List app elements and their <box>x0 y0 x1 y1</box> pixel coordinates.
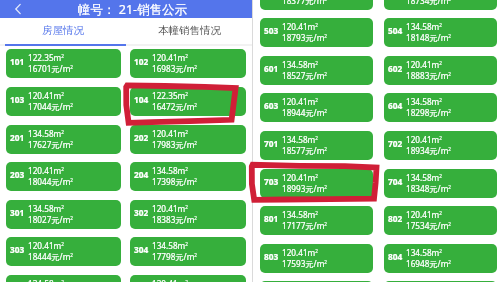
staticText: 134.58m2 <box>152 165 188 176</box>
staticText: 16701元/m2 <box>28 63 73 74</box>
staticText: 803 <box>264 251 279 262</box>
staticText: 102 <box>134 56 149 67</box>
staticText: 18944元/m2 <box>282 107 327 118</box>
button[interactable]: 402 <box>130 275 246 282</box>
staticText: 603 <box>264 100 279 111</box>
staticText: 201 <box>10 132 25 143</box>
staticText: 120.41m2 <box>282 96 318 107</box>
staticText: 134.58m2 <box>28 128 64 139</box>
staticText: 18527元/m2 <box>282 70 327 81</box>
button[interactable]: 301 <box>6 200 121 229</box>
staticText: 601 <box>264 63 279 74</box>
button[interactable]: 303 <box>6 237 121 266</box>
button[interactable]: 702 <box>384 131 497 160</box>
button[interactable]: 304 <box>130 237 246 266</box>
staticText: 18883元/m2 <box>406 70 451 81</box>
button[interactable]: 403 <box>260 0 373 10</box>
button[interactable]: 503 <box>260 18 373 47</box>
button[interactable]: 504 <box>384 18 497 47</box>
staticText: 18044元/m2 <box>28 176 73 187</box>
button[interactable]: Back <box>0 0 20 18</box>
staticText: 18577元/m2 <box>282 145 327 156</box>
staticText: 120.41m2 <box>406 134 442 145</box>
staticText: 202 <box>134 132 149 143</box>
staticText: 本幢销售情况 <box>158 24 221 37</box>
button[interactable]: 602 <box>384 56 497 85</box>
staticText: 134.58m2 <box>282 134 318 145</box>
button[interactable]: 704 <box>384 169 497 198</box>
staticText: 120.41m2 <box>282 247 318 258</box>
button[interactable]: 302 <box>130 200 246 229</box>
button[interactable]: 101 <box>6 49 121 78</box>
staticText: 303 <box>10 244 25 255</box>
staticText: 103 <box>10 94 25 105</box>
staticText: 18934元/m2 <box>406 145 451 156</box>
staticText: 房屋情况 <box>42 24 84 37</box>
button[interactable]: 202 <box>130 125 246 154</box>
staticText: 17983元/m2 <box>152 139 197 150</box>
staticText: 704 <box>388 176 403 187</box>
staticText: 17177元/m2 <box>282 220 327 231</box>
staticText: 104 <box>134 94 149 105</box>
button[interactable]: 房屋情况 <box>0 18 126 47</box>
staticText: 301 <box>10 207 25 218</box>
staticText: 134.58m2 <box>406 96 442 107</box>
staticText: 203 <box>10 169 25 180</box>
button[interactable]: 104 <box>130 87 246 116</box>
staticText: 120.41m2 <box>28 90 64 101</box>
staticText: 804 <box>388 251 403 262</box>
button[interactable]: 本幢销售情况 <box>126 18 252 47</box>
staticText: 504 <box>388 25 403 36</box>
button[interactable]: 701 <box>260 131 373 160</box>
staticText: 134.58m2 <box>406 172 442 183</box>
staticText: 18793元/m2 <box>282 32 327 43</box>
staticText: 602 <box>388 63 403 74</box>
button[interactable]: 604 <box>384 93 497 122</box>
staticText: 503 <box>264 25 279 36</box>
staticText: 120.41m2 <box>152 278 188 282</box>
button[interactable]: 401 <box>6 275 121 282</box>
staticText: 18148元/m2 <box>406 32 451 43</box>
staticText: 18444元/m2 <box>28 251 73 262</box>
staticText: 16948元/m2 <box>406 258 451 269</box>
button[interactable]: 601 <box>260 56 373 85</box>
staticText: 18348元/m2 <box>406 183 451 194</box>
button[interactable]: 603 <box>260 93 373 122</box>
button[interactable]: 803 <box>260 244 373 273</box>
staticText: 120.41m2 <box>282 21 318 32</box>
staticText: 16472元/m2 <box>152 101 197 112</box>
staticText: 120.41m2 <box>152 203 188 214</box>
button[interactable]: 201 <box>6 125 121 154</box>
button[interactable]: 804 <box>384 244 497 273</box>
button[interactable]: 203 <box>6 162 121 191</box>
staticText: 134.58m2 <box>406 247 442 258</box>
staticText: 16983元/m2 <box>152 63 197 74</box>
staticText: 18298元/m2 <box>406 107 451 118</box>
staticText: 17044元/m2 <box>28 101 73 112</box>
staticText: 120.41m2 <box>152 52 188 63</box>
button[interactable]: 802 <box>384 206 497 235</box>
button[interactable]: 102 <box>130 49 246 78</box>
staticText: 134.58m2 <box>282 209 318 220</box>
staticText: 17627元/m2 <box>28 139 73 150</box>
staticText: 304 <box>134 244 149 255</box>
button[interactable]: 801 <box>260 206 373 235</box>
button[interactable]: 404 <box>384 0 497 10</box>
button[interactable]: 703 <box>260 169 373 198</box>
staticText: 17398元/m2 <box>152 176 197 187</box>
staticText: 18993元/m2 <box>282 183 327 194</box>
staticText: 801 <box>264 213 279 224</box>
staticText: 120.41m2 <box>406 59 442 70</box>
staticText: 604 <box>388 100 403 111</box>
staticText: 120.41m2 <box>282 172 318 183</box>
staticText: 134.58m2 <box>406 21 442 32</box>
button[interactable]: 204 <box>130 162 246 191</box>
staticText: 802 <box>388 213 403 224</box>
button[interactable]: 902 <box>384 281 497 282</box>
staticText: 702 <box>388 138 403 149</box>
staticText: 120.41m2 <box>28 240 64 251</box>
button[interactable]: 901 <box>260 281 373 282</box>
button[interactable]: 103 <box>6 87 121 116</box>
staticText: 101 <box>10 56 25 67</box>
staticText: 120.41m2 <box>152 128 188 139</box>
